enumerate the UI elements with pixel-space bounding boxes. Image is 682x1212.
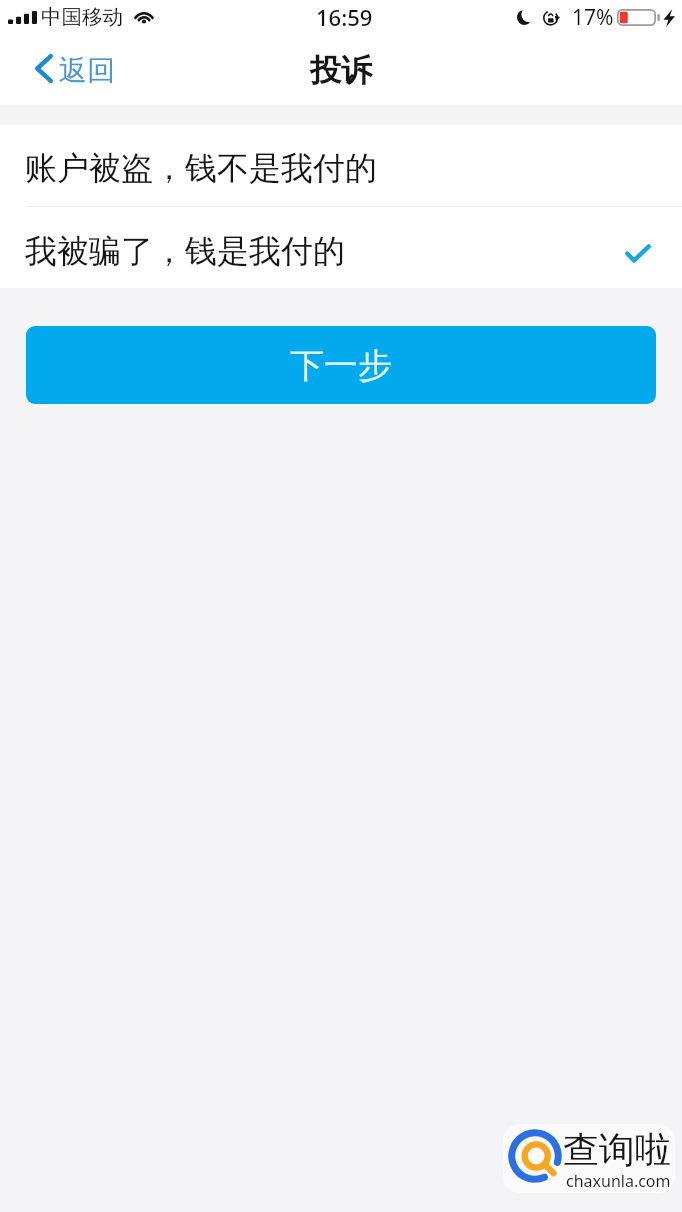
staticText: chaxunla.com [566,1170,671,1192]
staticText: 投诉 [310,51,372,90]
other: chaxunla logo [503,1124,568,1189]
button[interactable]: 返回 [35,39,115,97]
staticText: 返回 [59,53,115,88]
staticText: 我被骗了，钱是我付的 [25,231,345,271]
staticText: 下一步 [290,344,392,387]
button[interactable]: 账户被盗，钱不是我付的 [0,125,682,206]
button[interactable]: 我被骗了，钱是我付的 [0,206,682,288]
staticText: 16:59 [316,2,373,32]
staticText: 中国移动 [41,4,123,30]
button[interactable]: 下一步 [26,326,656,404]
staticText: 17% [572,3,614,32]
staticText: 查询啦 [563,1127,671,1172]
staticText: 账户被盗，钱不是我付的 [25,148,377,188]
